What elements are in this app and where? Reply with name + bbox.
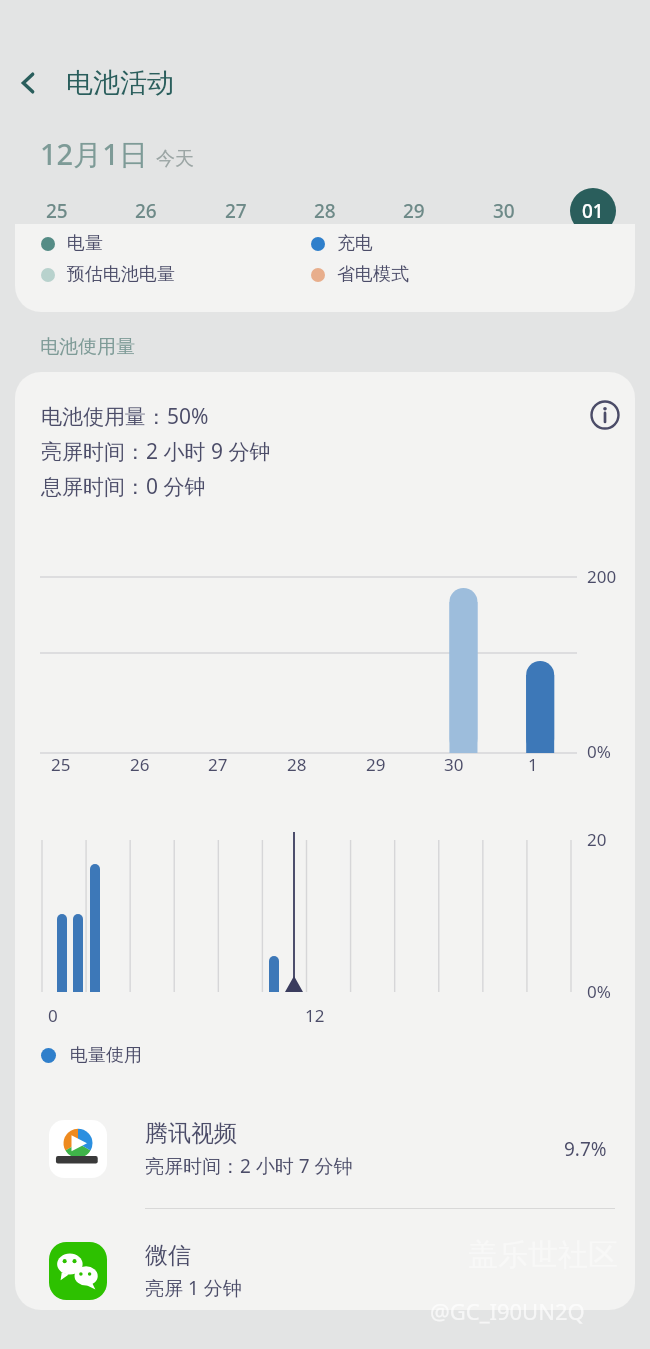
staticText: 息屏时间：0 分钟: [41, 472, 206, 501]
staticText: 1: [528, 753, 538, 776]
staticText: 27: [208, 753, 228, 776]
staticText: 预估电池电量: [67, 263, 175, 286]
button[interactable]: 28: [302, 188, 348, 234]
staticText: 20: [587, 828, 607, 851]
button[interactable]: 微信: [15, 1212, 635, 1310]
button[interactable]: 电量: [15, 224, 635, 312]
button[interactable]: 30: [481, 188, 527, 234]
staticText: 亮屏时间：2 小时 7 分钟: [145, 1153, 353, 1179]
staticText: 30: [493, 198, 515, 224]
staticText: 29: [403, 198, 425, 224]
staticText: 亮屏时间：2 小时 9 分钟: [41, 437, 271, 466]
button[interactable]: Info: [580, 390, 630, 440]
staticText: 电池活动: [66, 66, 174, 100]
staticText: 25: [51, 753, 71, 776]
staticText: 微信: [145, 1241, 191, 1270]
staticText: 充电: [337, 232, 373, 255]
staticText: 26: [135, 198, 157, 224]
button[interactable]: 29: [391, 188, 437, 234]
staticText: 28: [314, 198, 336, 224]
staticText: 01: [582, 198, 604, 224]
staticText: 200: [587, 565, 617, 588]
staticText: 腾讯视频: [145, 1119, 237, 1148]
staticText: 今天: [156, 147, 194, 171]
staticText: 12: [305, 1004, 325, 1027]
button[interactable]: 腾讯视频: [15, 1090, 635, 1208]
staticText: 亮屏 1 分钟: [145, 1275, 242, 1301]
staticText: 26: [130, 753, 150, 776]
staticText: 25: [46, 198, 68, 224]
staticText: @GC_I90UN2Q: [430, 1296, 585, 1326]
staticText: 电量使用: [70, 1044, 142, 1067]
staticText: 电量: [67, 232, 103, 255]
button[interactable]: 电量使用: [41, 1044, 142, 1067]
staticText: 电池使用量：50%: [41, 402, 209, 431]
staticText: 0%: [587, 980, 611, 1003]
staticText: 省电模式: [337, 263, 409, 286]
button[interactable]: 01: [570, 188, 616, 234]
staticText: 30: [444, 753, 464, 776]
staticText: 29: [366, 753, 386, 776]
button[interactable]: 27: [213, 188, 259, 234]
staticText: 0: [48, 1004, 58, 1027]
button[interactable]: 26: [123, 188, 169, 234]
staticText: 9.7%: [564, 1136, 607, 1162]
staticText: 27: [225, 198, 247, 224]
staticText: 12月1日: [40, 134, 148, 174]
staticText: 28: [287, 753, 307, 776]
staticText: 电池使用量: [40, 335, 135, 359]
button[interactable]: Back: [0, 55, 56, 111]
button[interactable]: 25: [34, 188, 80, 234]
staticText: 0%: [587, 740, 611, 763]
